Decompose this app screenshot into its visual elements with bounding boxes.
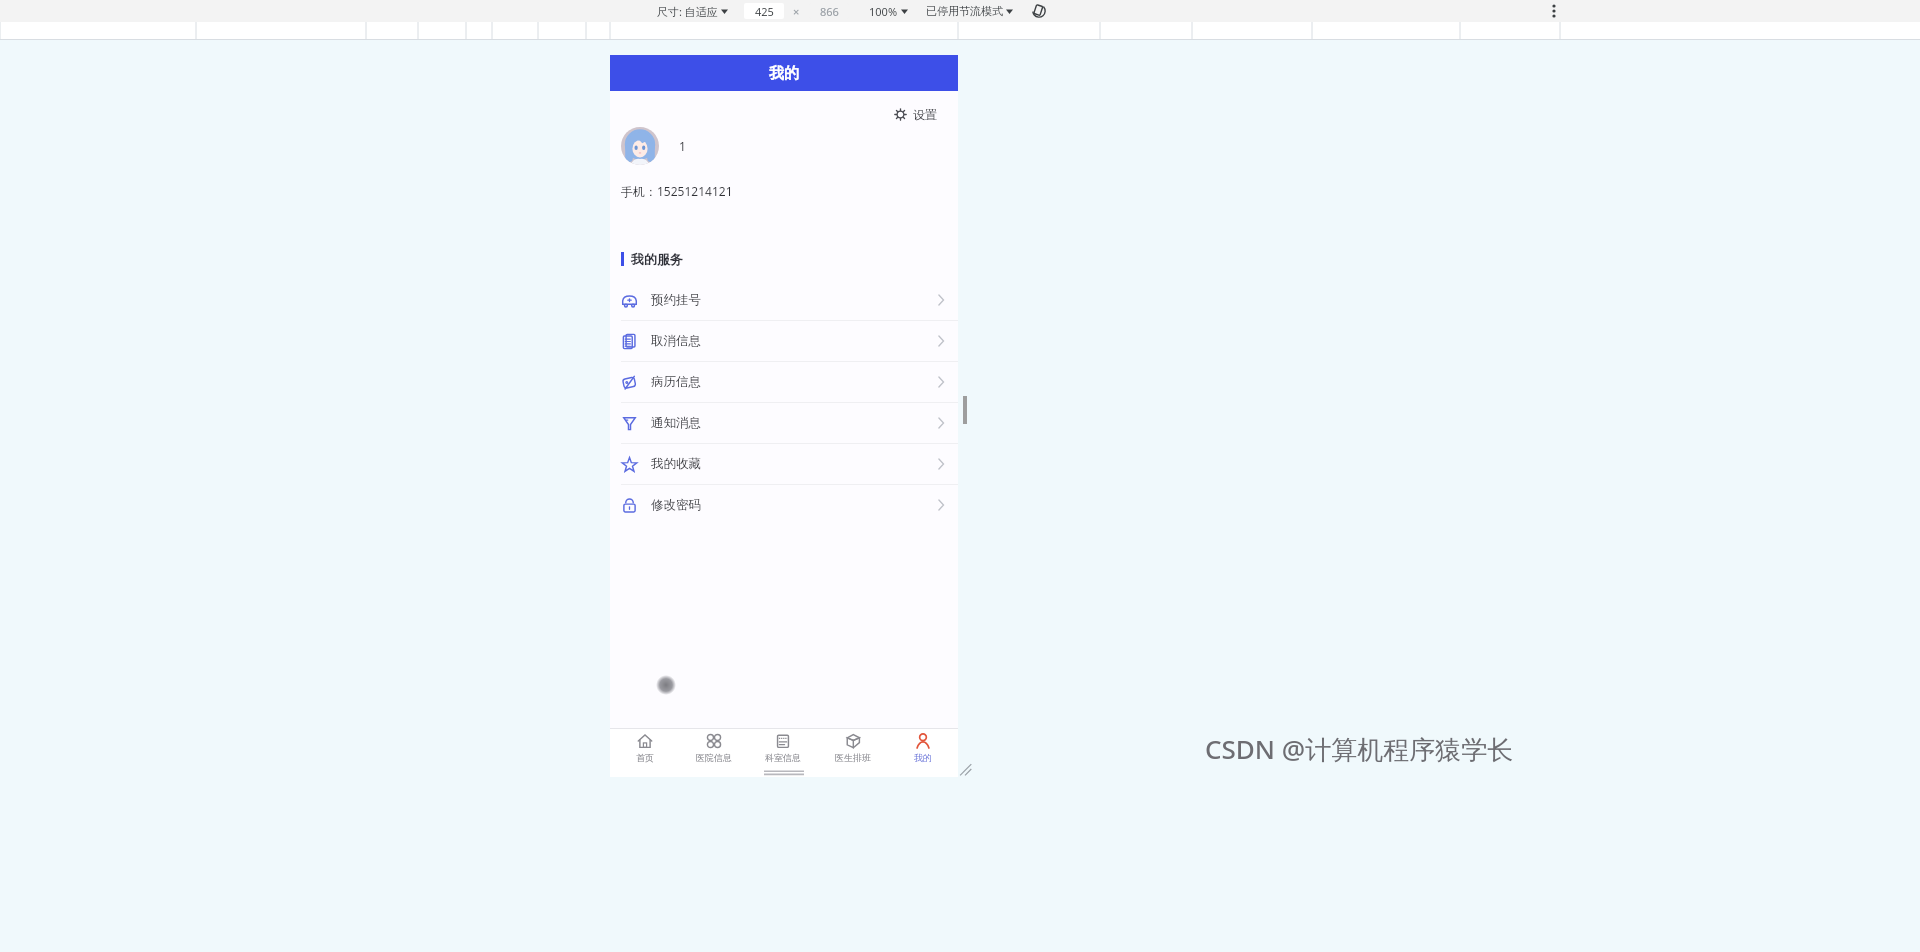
button[interactable]: 866: [809, 3, 849, 19]
button[interactable]: 425: [744, 3, 784, 19]
staticText: 首页: [636, 752, 654, 763]
staticText: 设置: [913, 107, 937, 122]
button[interactable]: Scroll to top: [656, 675, 676, 695]
button[interactable]: 医院信息: [679, 729, 748, 769]
button[interactable]: 首页: [610, 729, 679, 769]
button[interactable]: 我的收藏: [610, 444, 958, 484]
button[interactable]: 通知消息: [610, 403, 958, 443]
staticText: 取消信息: [651, 333, 701, 349]
button[interactable]: 预约挂号: [610, 280, 958, 320]
staticText: 我的: [769, 64, 799, 83]
staticText: 修改密码: [651, 497, 701, 513]
staticText: 我的服务: [631, 251, 683, 267]
staticText: 尺寸: 自适应: [657, 4, 718, 19]
button[interactable]: 病历信息: [610, 362, 958, 402]
staticText: 100%: [869, 4, 898, 19]
button[interactable]: Resize viewport: [958, 762, 972, 776]
staticText: 我的收藏: [651, 456, 701, 472]
staticText: 科室信息: [765, 752, 801, 763]
button[interactable]: 已停用节流模式: [924, 4, 1015, 18]
button[interactable]: 取消信息: [610, 321, 958, 361]
staticText: 425: [755, 4, 774, 19]
staticText: 1: [679, 138, 686, 154]
staticText: 通知消息: [651, 415, 701, 431]
button[interactable]: Rotate: [1029, 1, 1049, 21]
staticText: 已停用节流模式: [926, 4, 1003, 18]
staticText: ×: [793, 4, 800, 19]
button[interactable]: 科室信息: [748, 729, 818, 769]
button[interactable]: More options: [1540, 0, 1568, 22]
staticText: 866: [820, 4, 839, 19]
button[interactable]: 1: [610, 127, 958, 165]
button[interactable]: 修改密码: [610, 485, 958, 525]
staticText: CSDN @计算机程序猿学长: [1205, 731, 1514, 767]
button[interactable]: 设置: [892, 105, 939, 124]
button[interactable]: 我的: [888, 729, 958, 769]
staticText: 病历信息: [651, 374, 701, 390]
button[interactable]: 医生排班: [818, 729, 888, 769]
staticText: 医院信息: [696, 752, 732, 763]
staticText: 我的: [914, 752, 932, 763]
staticText: 预约挂号: [651, 292, 701, 308]
staticText: 手机：15251214121: [621, 183, 733, 199]
button[interactable]: 尺寸: 自适应: [655, 4, 730, 19]
staticText: 医生排班: [835, 752, 871, 763]
button[interactable]: 100%: [867, 4, 910, 19]
